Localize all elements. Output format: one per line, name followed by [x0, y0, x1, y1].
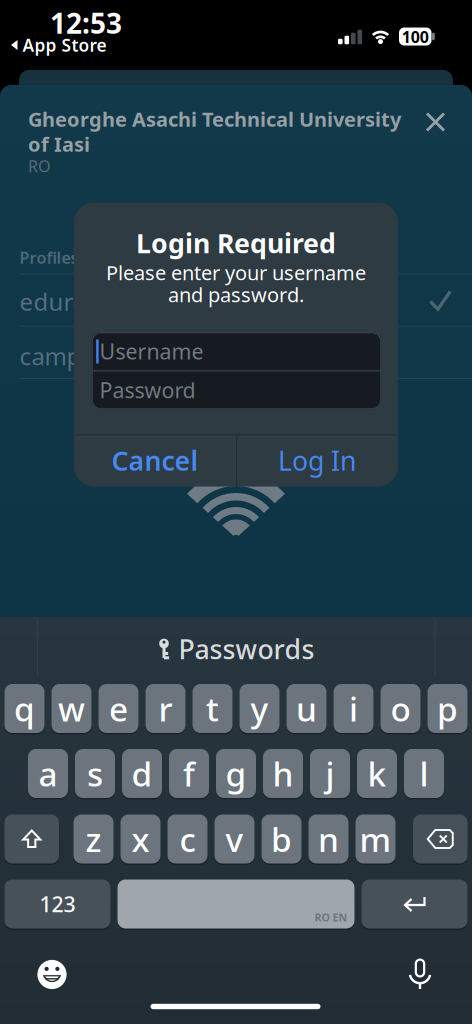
button[interactable]: z — [73, 814, 113, 863]
staticText: App Store — [22, 33, 106, 56]
staticText: z — [85, 817, 101, 861]
button[interactable]: Back to App Store — [9, 33, 106, 56]
button[interactable]: Dictation — [407, 956, 433, 992]
button[interactable]: f — [169, 749, 209, 798]
staticText: q — [14, 686, 35, 731]
staticText: i — [349, 686, 358, 731]
staticText: k — [367, 751, 386, 796]
button[interactable]: c — [167, 814, 207, 863]
staticText: Profiles — [19, 247, 78, 268]
staticText: y — [250, 686, 268, 731]
staticText: t — [206, 686, 219, 731]
staticText: d — [131, 751, 152, 796]
button[interactable]: Space — [117, 879, 354, 928]
button[interactable]: Emoji — [35, 957, 69, 991]
staticText: u — [296, 686, 317, 731]
staticText: m — [359, 817, 391, 861]
button[interactable]: Cancel — [74, 434, 235, 486]
staticText: Password — [99, 376, 195, 404]
staticText: eduroam — [19, 286, 122, 317]
staticText: 100 — [402, 26, 429, 47]
staticText: a — [38, 751, 57, 796]
staticText: 12:53 — [50, 4, 122, 42]
button[interactable]: i — [333, 684, 373, 733]
staticText: Username — [99, 337, 203, 365]
staticText: 123 — [39, 890, 75, 918]
button[interactable]: o — [380, 684, 420, 733]
staticText: j — [325, 751, 334, 796]
button[interactable]: Delete — [413, 814, 467, 863]
button[interactable]: Log In — [236, 434, 397, 486]
staticText: f — [183, 751, 195, 796]
button[interactable]: Passwords — [157, 629, 314, 669]
staticText: p — [437, 686, 458, 731]
staticText: b — [271, 817, 292, 861]
button[interactable]: b — [261, 814, 301, 863]
button[interactable]: eduroam — [0, 275, 472, 327]
button[interactable]: campus — [0, 330, 472, 382]
button[interactable]: Return — [361, 879, 467, 928]
button[interactable]: q — [4, 684, 44, 733]
staticText: Log In — [278, 443, 356, 478]
staticText: Passwords — [178, 631, 314, 667]
button[interactable]: n — [308, 814, 348, 863]
staticText: o — [390, 686, 410, 731]
button[interactable]: s — [75, 749, 115, 798]
staticText: campus — [19, 340, 107, 372]
button[interactable]: Numbers — [4, 879, 110, 928]
button[interactable]: Username — [91, 332, 381, 370]
staticText: x — [131, 817, 149, 861]
button[interactable]: g — [216, 749, 256, 798]
button[interactable]: a — [28, 749, 68, 798]
staticText: Gheorghe Asachi Technical University — [28, 106, 401, 132]
staticText: n — [318, 817, 339, 861]
staticText: w — [58, 686, 85, 731]
button[interactable]: Close — [422, 109, 448, 135]
button[interactable]: y — [239, 684, 279, 733]
button[interactable]: j — [310, 749, 350, 798]
staticText: Login Required — [136, 225, 336, 261]
button[interactable]: t — [192, 684, 232, 733]
staticText: v — [225, 817, 243, 861]
button[interactable]: r — [145, 684, 185, 733]
button[interactable]: k — [357, 749, 397, 798]
button[interactable]: Shift — [4, 814, 59, 863]
button[interactable]: p — [427, 684, 467, 733]
button[interactable]: d — [122, 749, 162, 798]
staticText: RO — [28, 155, 50, 177]
button[interactable]: x — [120, 814, 160, 863]
staticText: e — [109, 686, 128, 731]
staticText: Cancel — [111, 443, 198, 478]
button[interactable]: e — [98, 684, 138, 733]
staticText: s — [87, 751, 103, 796]
button[interactable]: m — [355, 814, 395, 863]
staticText: of Iasi — [28, 131, 90, 157]
button[interactable]: h — [263, 749, 303, 798]
button[interactable]: w — [51, 684, 91, 733]
staticText: Please enter your username — [106, 259, 366, 286]
staticText: r — [158, 686, 172, 731]
button[interactable]: l — [404, 749, 444, 798]
button[interactable]: v — [214, 814, 254, 863]
staticText: RO EN — [314, 910, 347, 924]
button[interactable]: u — [286, 684, 326, 733]
staticText: and password. — [168, 281, 304, 308]
staticText: c — [179, 817, 195, 861]
staticText: g — [225, 751, 246, 796]
button[interactable]: Password — [91, 371, 381, 409]
staticText: h — [272, 751, 293, 796]
staticText: l — [419, 751, 428, 796]
